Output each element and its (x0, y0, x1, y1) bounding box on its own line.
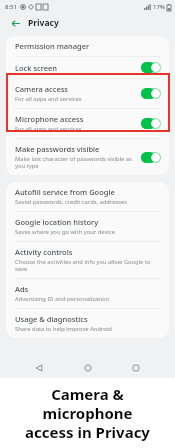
button[interactable]: Toggle, on (141, 118, 161, 129)
staticText: Make last character of passwords visible… (15, 155, 135, 170)
staticText: 8:51 (5, 3, 17, 11)
staticText: Share data to help improve Android (15, 325, 112, 333)
staticText: Saved passwords, credit cards, addresses (15, 198, 128, 206)
button[interactable]: Lock screen (6, 57, 169, 78)
staticText: Choose the activities and info you allow… (15, 258, 161, 273)
button[interactable]: Google location history (6, 212, 169, 241)
staticText: Activity controls (15, 247, 73, 257)
staticText: Advertising ID and personalization (15, 295, 109, 303)
staticText: Privacy (28, 17, 59, 29)
staticText: Lock screen (15, 63, 58, 73)
button[interactable]: Toggle, on (141, 152, 161, 163)
button[interactable]: Usage & diagnostics (6, 309, 169, 338)
button[interactable]: Toggle, on (141, 62, 161, 73)
staticText: For all apps and services (15, 125, 82, 133)
staticText: 17% (153, 3, 165, 11)
button[interactable]: Ads (6, 279, 169, 308)
button[interactable]: Toggle, on (141, 88, 161, 99)
button[interactable]: Microphone access (6, 109, 169, 138)
button[interactable]: Recent apps (126, 358, 146, 378)
button[interactable]: Activity controls (6, 242, 169, 278)
staticText: Make passwords visible (15, 144, 100, 154)
staticText: Autofill service from Google (15, 187, 115, 197)
staticText: For all apps and services (15, 95, 82, 103)
staticText: Usage & diagnostics (15, 314, 88, 324)
button[interactable]: Back (7, 15, 23, 31)
staticText: Saves where you go with your device (15, 228, 115, 236)
button[interactable]: Permission manager (6, 36, 169, 56)
button[interactable]: Back (29, 358, 49, 378)
staticText: Microphone access (15, 114, 84, 124)
button[interactable]: Camera access (6, 79, 169, 108)
button[interactable]: Make passwords visible (6, 139, 169, 175)
staticText: Ads (15, 284, 29, 294)
staticText: Google location history (15, 217, 99, 227)
staticText: Permission manager (15, 41, 90, 51)
staticText: Camera & microphone access in Privacy (0, 384, 175, 442)
button[interactable]: Autofill service from Google (6, 182, 169, 211)
staticText: Camera access (15, 84, 68, 94)
button[interactable]: Home (78, 358, 98, 378)
